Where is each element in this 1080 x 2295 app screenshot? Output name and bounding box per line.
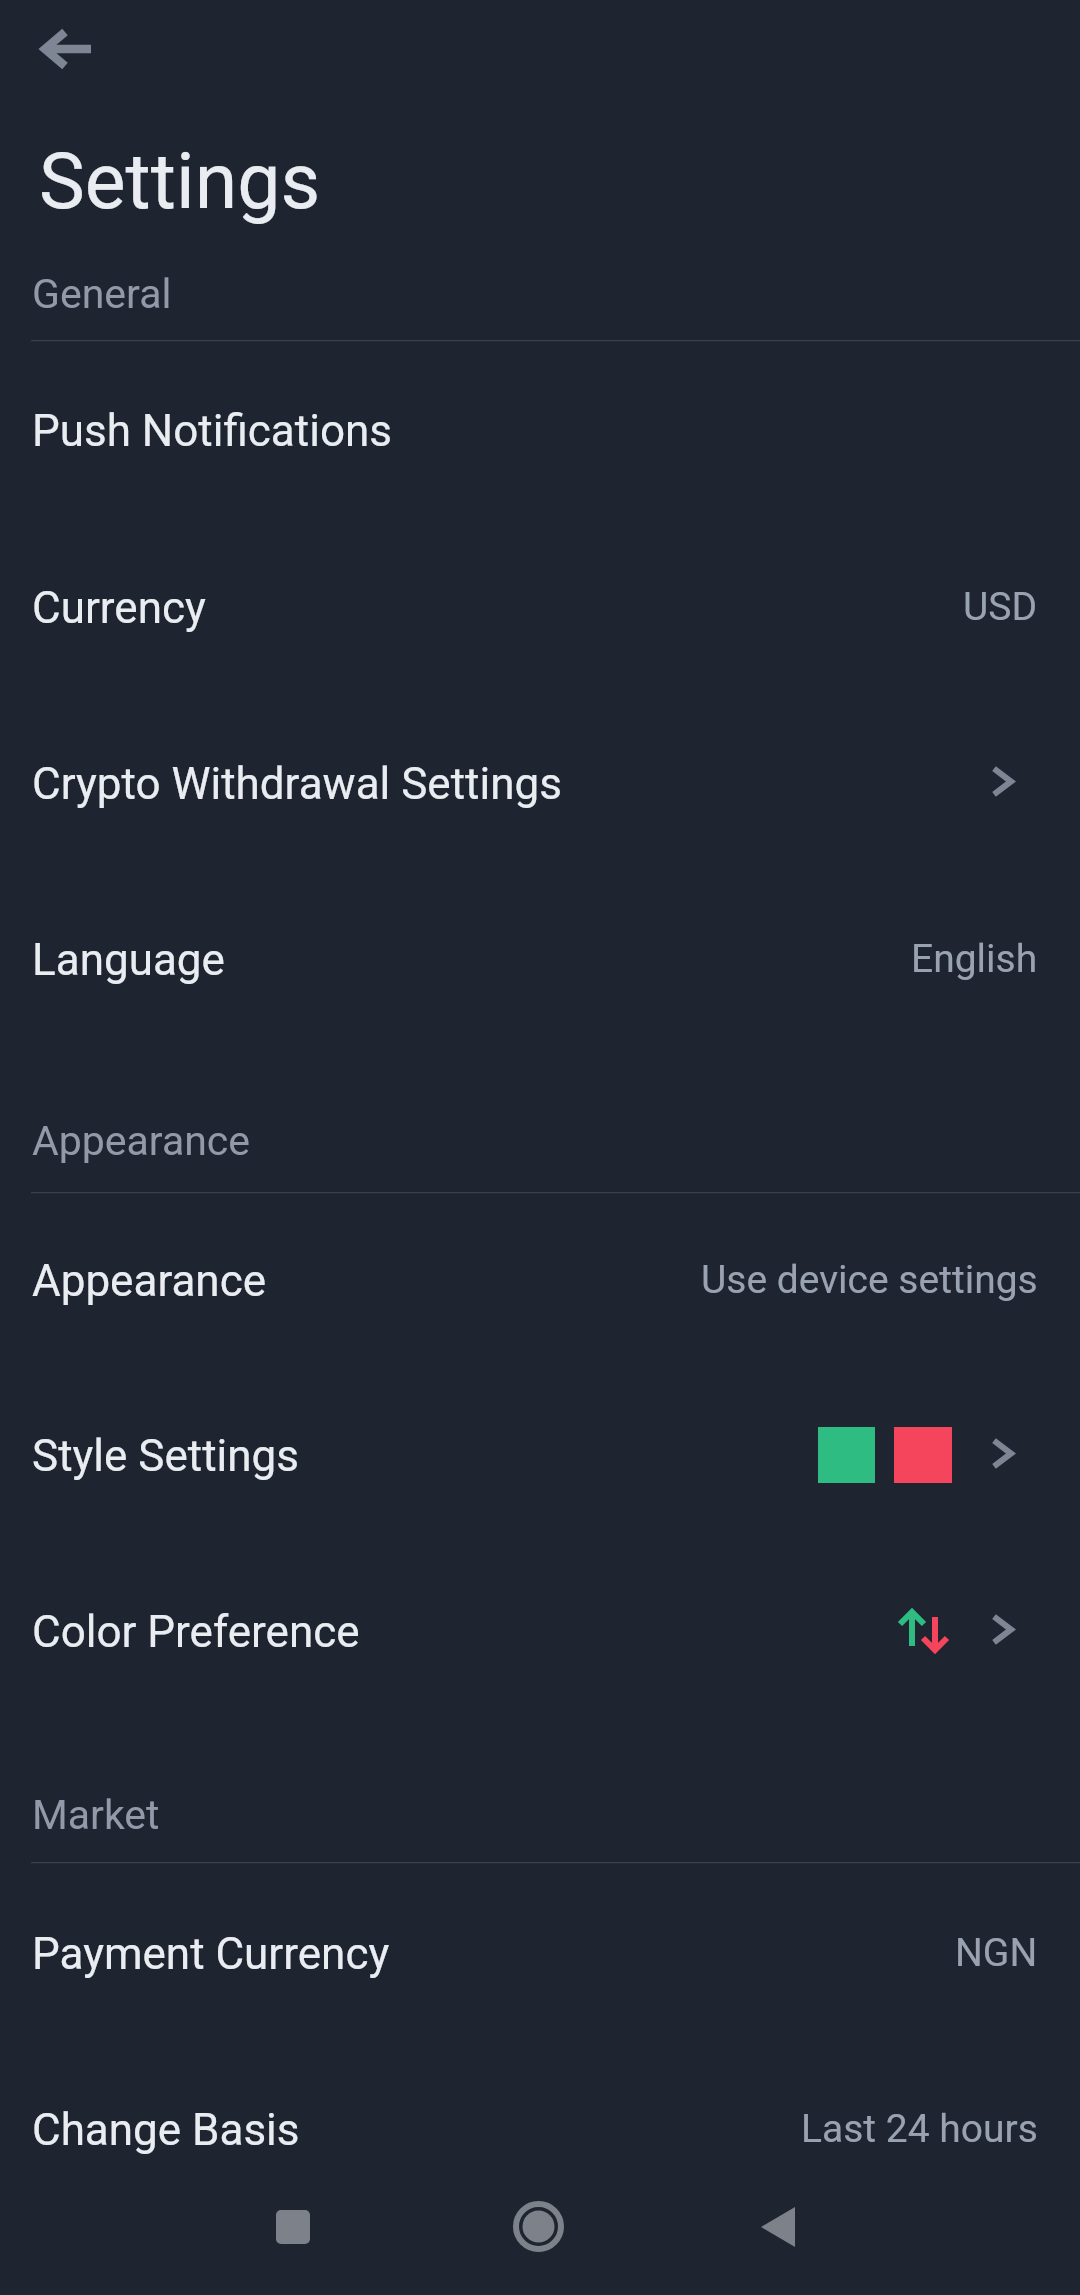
staticText: Market [32, 1791, 160, 1839]
staticText: Currency [32, 582, 206, 634]
button[interactable]: Currency [0, 519, 1080, 695]
staticText: Payment Currency [32, 1928, 390, 1980]
staticText: Crypto Withdrawal Settings [32, 758, 562, 810]
button[interactable]: Language [0, 871, 1080, 1047]
staticText: Appearance [32, 1117, 251, 1165]
button[interactable]: Back [761, 2207, 795, 2247]
staticText: Style Settings [32, 1430, 299, 1482]
button[interactable]: Appearance [0, 1192, 1080, 1368]
button[interactable]: Style Settings [0, 1367, 1080, 1543]
button[interactable]: Crypto Withdrawal Settings [0, 695, 1080, 871]
staticText: Use device settings [701, 1257, 1038, 1303]
button[interactable]: Change Basis [0, 2041, 1080, 2217]
staticText: USD [963, 584, 1038, 630]
staticText: Push Notifications [32, 405, 392, 457]
staticText: Change Basis [32, 2104, 300, 2156]
staticText: Settings [39, 137, 321, 227]
staticText: Language [32, 934, 225, 986]
button[interactable]: Recent apps [276, 2210, 310, 2244]
button[interactable]: Payment Currency [0, 1865, 1080, 2041]
button[interactable]: Home [513, 2201, 564, 2252]
staticText: Appearance [32, 1255, 267, 1307]
staticText: Color Preference [32, 1606, 360, 1658]
button[interactable]: Push Notifications [0, 342, 1080, 518]
staticText: NGN [955, 1930, 1038, 1976]
button[interactable]: Back [14, 0, 114, 98]
staticText: General [32, 270, 172, 318]
staticText: English [911, 936, 1038, 982]
button[interactable]: Color Preference [0, 1543, 1080, 1719]
staticText: Last 24 hours [801, 2106, 1038, 2152]
